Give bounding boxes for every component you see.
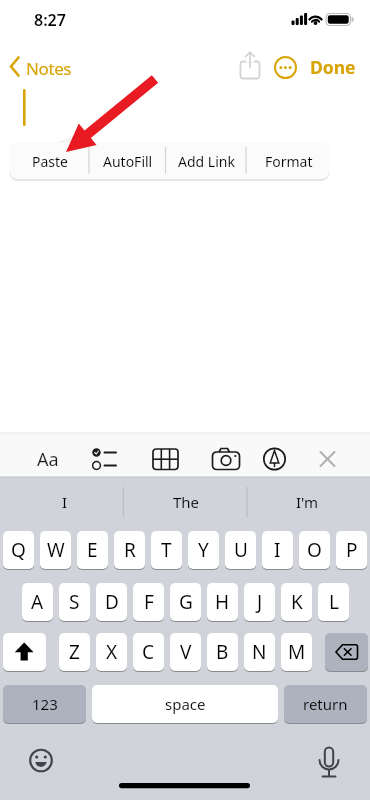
staticText: T [161, 537, 172, 563]
staticText: I'm [296, 492, 319, 512]
staticText: R [124, 537, 136, 563]
staticText: N [252, 639, 267, 665]
button[interactable]: Done [273, 52, 370, 82]
staticText: Notes [26, 57, 72, 80]
staticText: AutoFill [103, 152, 153, 171]
button[interactable] [6, 52, 76, 82]
staticText: E [87, 537, 98, 563]
staticText: Aa [37, 447, 59, 472]
button[interactable] [88, 444, 118, 474]
button[interactable]: O [299, 531, 330, 569]
button[interactable] [150, 444, 180, 474]
staticText: A [31, 589, 44, 615]
button[interactable]: B [207, 633, 238, 671]
staticText: S [69, 589, 80, 615]
button[interactable]: 123 [3, 685, 86, 723]
button[interactable]: I [5, 487, 125, 517]
staticText: G [179, 589, 193, 615]
button[interactable]: P [336, 531, 367, 569]
staticText: I [62, 492, 68, 512]
button[interactable]: F [133, 583, 164, 621]
button[interactable]: A [22, 583, 53, 621]
button[interactable]: E [77, 531, 108, 569]
button[interactable]: M [281, 633, 312, 671]
button[interactable] [9, 142, 89, 179]
button[interactable]: D [96, 583, 127, 621]
staticText: O [307, 537, 322, 563]
staticText: Q [11, 537, 26, 563]
staticText: X [106, 639, 118, 665]
button[interactable]: I [262, 531, 293, 569]
button[interactable] [89, 142, 166, 179]
staticText: F [144, 589, 154, 615]
staticText: C [142, 639, 155, 665]
staticText: D [105, 589, 119, 615]
button[interactable]: The [126, 487, 246, 517]
button[interactable]: V [170, 633, 201, 671]
staticText: Y [198, 537, 209, 563]
staticText: W [47, 537, 65, 563]
button[interactable]: K [281, 583, 312, 621]
staticText: Done [310, 55, 356, 79]
button[interactable] [166, 142, 246, 179]
button[interactable] [210, 444, 242, 474]
button[interactable]: S [59, 583, 90, 621]
staticText: 8:27 [34, 9, 66, 31]
button[interactable]: H [207, 583, 238, 621]
staticText: The [173, 492, 200, 512]
button[interactable]: Aa [0, 444, 108, 474]
staticText: Paste [32, 152, 68, 171]
button[interactable]: G [170, 583, 201, 621]
button[interactable]: N [244, 633, 275, 671]
button[interactable] [261, 444, 289, 474]
staticText: return [303, 694, 348, 714]
staticText: I [274, 537, 281, 563]
staticText: Format [265, 152, 313, 171]
button[interactable] [313, 444, 341, 474]
button[interactable]: Z [59, 633, 90, 671]
button[interactable]: L [318, 583, 349, 621]
button[interactable]: I'm [247, 487, 367, 517]
button[interactable]: space [92, 685, 278, 723]
button[interactable]: Q [3, 531, 34, 569]
button[interactable]: T [151, 531, 182, 569]
button[interactable] [3, 633, 46, 671]
button[interactable]: W [40, 531, 71, 569]
staticText: Add Link [178, 152, 235, 171]
staticText: Z [69, 639, 80, 665]
button[interactable]: Y [188, 531, 219, 569]
staticText: U [234, 537, 248, 563]
staticText: 123 [32, 694, 58, 714]
staticText: J [257, 589, 263, 615]
staticText: H [215, 589, 230, 615]
button[interactable] [246, 142, 330, 179]
button[interactable]: U [225, 531, 256, 569]
staticText: space [165, 694, 206, 714]
staticText: K [291, 589, 303, 615]
staticText: B [216, 639, 229, 665]
button[interactable]: J [244, 583, 275, 621]
button[interactable]: C [133, 633, 164, 671]
staticText: L [329, 589, 339, 615]
button[interactable] [325, 633, 368, 671]
button[interactable]: R [114, 531, 145, 569]
staticText: M [288, 639, 306, 665]
button[interactable]: return [284, 685, 367, 723]
staticText: V [180, 639, 192, 665]
button[interactable]: X [96, 633, 127, 671]
staticText: P [346, 537, 358, 563]
